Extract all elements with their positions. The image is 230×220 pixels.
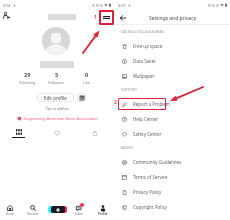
button[interactable]: Help Center: [115, 111, 230, 126]
staticText: Report a Problem: [133, 101, 171, 107]
staticText: Privacy Policy: [133, 189, 162, 195]
staticText: Settings and privacy: [149, 15, 197, 22]
button[interactable]: Profile: [92, 205, 114, 216]
button[interactable]: Back: [117, 12, 128, 23]
staticText: CACHE & CELLULAR DATA: [121, 29, 164, 34]
button[interactable]: Data Saver: [115, 53, 230, 68]
button[interactable]: Bookmarks: [77, 93, 86, 102]
button[interactable]: Private: [83, 129, 107, 141]
staticText: Home: [6, 212, 15, 216]
button[interactable]: Create: [47, 204, 67, 214]
staticText: Safety Center: [133, 131, 162, 137]
staticText: Inbox: [75, 212, 83, 216]
button[interactable]: Terms of Service: [115, 169, 230, 184]
staticText: Edit profile: [44, 95, 67, 101]
button[interactable]: Community Guidelines: [115, 154, 230, 169]
button[interactable]: Add friends: [1, 10, 12, 21]
button[interactable]: Copyright Policy: [115, 199, 230, 214]
staticText: Wallpaper: [133, 73, 155, 79]
staticText: 1: [94, 14, 97, 21]
staticText: 1: [81, 204, 83, 207]
button[interactable]: Videos: [6, 129, 30, 143]
button[interactable]: Menu: [99, 10, 114, 25]
staticText: 0: [85, 71, 89, 79]
button[interactable]: Wallpaper: [115, 68, 230, 83]
staticText: 2: [114, 99, 117, 106]
staticText: Profile: [98, 212, 108, 216]
staticText: Terms of Service: [133, 174, 168, 180]
staticText: Followers: [48, 80, 65, 85]
button[interactable]: Report a Problem: [115, 96, 230, 111]
staticText: SUPPORT: [121, 87, 137, 92]
staticText: Following: [19, 80, 36, 85]
button[interactable]: Liked: [45, 129, 69, 141]
button[interactable]: Safety Center: [115, 126, 230, 141]
staticText: Community Guidelines: [133, 159, 182, 165]
staticText: Discover: [27, 212, 39, 216]
button[interactable]: Edit profile: [37, 93, 74, 102]
staticText: 29: [24, 71, 31, 79]
staticText: Free up space: [133, 43, 163, 49]
staticText: Tap to add bio: [46, 106, 69, 111]
button[interactable]: Privacy Policy: [115, 184, 230, 199]
staticText: Supporting: American Heart Association: [24, 116, 98, 121]
staticText: 4:04: [3, 3, 11, 8]
button[interactable]: Free up space: [115, 38, 230, 53]
staticText: Help Center: [133, 116, 159, 122]
staticText: Like: [83, 80, 90, 85]
staticText: Data Saver: [133, 58, 156, 64]
staticText: 5: [55, 71, 59, 79]
button[interactable]: Discover: [22, 205, 44, 216]
staticText: 4:07: [118, 3, 126, 8]
button[interactable]: 1: [68, 205, 90, 216]
staticText: ABOUT: [121, 145, 134, 150]
staticText: Copyright Policy: [133, 204, 168, 210]
button[interactable]: Home: [0, 205, 21, 216]
